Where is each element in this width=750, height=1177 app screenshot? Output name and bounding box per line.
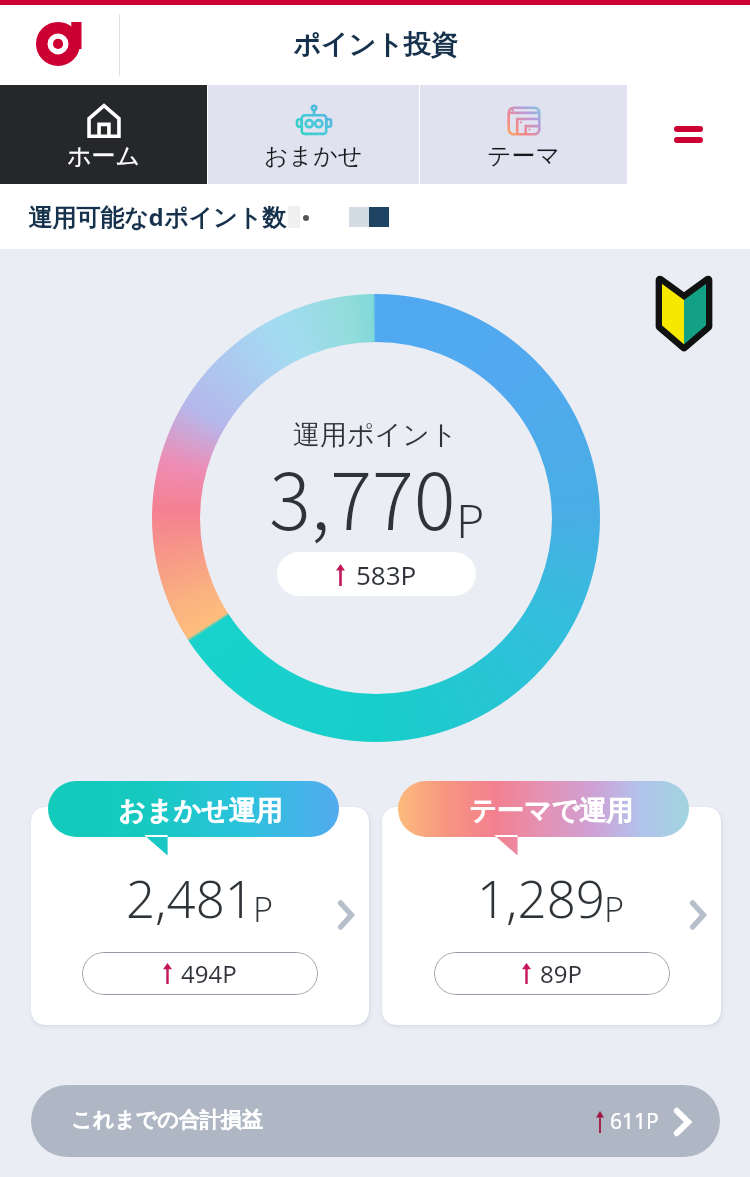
button[interactable]: おまかせ [208, 85, 419, 184]
staticText: P [604, 886, 625, 932]
staticText: おまかせ [264, 141, 363, 171]
button[interactable]: 1,289 [382, 807, 721, 1025]
button[interactable]: これまでの合計損益 [31, 1085, 720, 1157]
staticText: テーマで運用 [469, 794, 633, 828]
staticText: 3,770 [269, 440, 456, 553]
staticText: 611P [610, 1107, 659, 1136]
staticText: 583P [356, 557, 417, 592]
staticText: ポイント投資 [293, 28, 458, 62]
staticText: 1,289 [477, 863, 605, 932]
staticText: 運用可能なdポイント数 [28, 200, 286, 233]
staticText: おまかせ運用 [118, 794, 283, 828]
button[interactable]: テーマ [420, 85, 627, 184]
staticText: ホーム [67, 141, 141, 171]
staticText: 89P [540, 957, 582, 990]
staticText: 2,481 [126, 863, 254, 932]
staticText: これまでの合計損益 [71, 1107, 263, 1133]
staticText: テーマ [487, 141, 561, 171]
button[interactable]: docomo ホーム [0, 5, 119, 85]
button[interactable]: メニュー [627, 85, 750, 184]
staticText: P [253, 886, 274, 932]
staticText: 運用ポイント [293, 418, 458, 452]
staticText: 494P [181, 957, 237, 990]
staticText: P [456, 485, 485, 552]
button[interactable]: ホーム [0, 85, 207, 184]
button[interactable]: 2,481 [31, 807, 369, 1025]
